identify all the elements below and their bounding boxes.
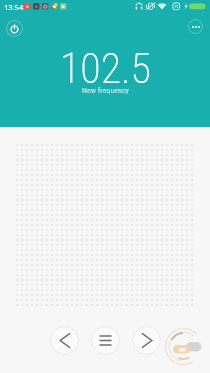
button[interactable]: Power xyxy=(6,20,23,37)
button[interactable]: Next station xyxy=(132,326,161,355)
staticText: New frequency xyxy=(82,86,129,95)
staticText: 102.5 xyxy=(60,44,151,93)
button[interactable]: Station list xyxy=(91,326,120,355)
staticText: 13:54 xyxy=(4,2,24,12)
button[interactable]: More options xyxy=(188,19,203,34)
button[interactable]: Previous station xyxy=(50,326,79,355)
